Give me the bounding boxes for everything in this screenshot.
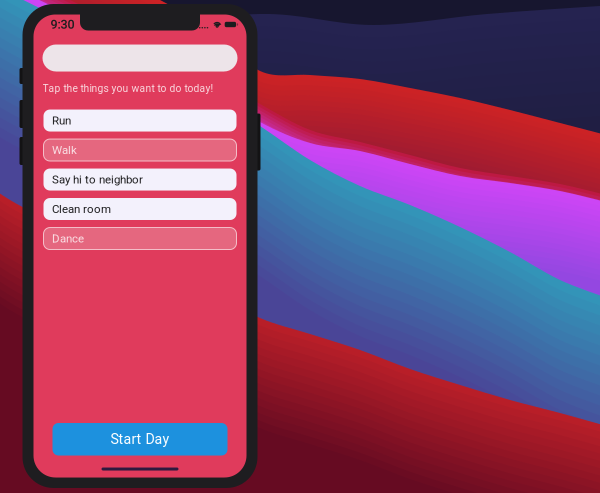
staticText: 9:30: [50, 17, 74, 32]
button[interactable]: Dance: [43, 227, 236, 249]
staticText: Dance: [52, 232, 84, 245]
button[interactable]: Start Day: [52, 423, 227, 455]
staticText: Run: [52, 114, 71, 127]
button[interactable]: Say hi to neighbor: [43, 168, 236, 190]
button[interactable]: Clean room: [43, 198, 236, 220]
staticText: Clean room: [52, 202, 111, 216]
staticText: Say hi to neighbor: [52, 173, 143, 186]
staticText: Start Day: [110, 431, 169, 448]
staticText: Walk: [52, 143, 77, 157]
button[interactable]: Walk: [43, 139, 236, 161]
staticText: Tap the things you want to do today!: [42, 82, 213, 94]
button[interactable]: Run: [43, 109, 236, 131]
